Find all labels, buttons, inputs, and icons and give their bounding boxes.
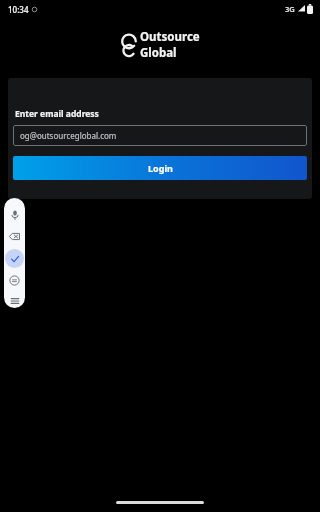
button[interactable]: og@outsourceglobal.com [13, 125, 307, 146]
button[interactable]: Voice input [5, 205, 24, 224]
button[interactable]: Confirm [5, 249, 24, 268]
staticText: Enter email address [15, 108, 99, 120]
staticText: og@outsourceglobal.com [20, 130, 117, 141]
staticText: 10:34 [8, 4, 29, 15]
staticText: Global [140, 45, 177, 61]
button[interactable]: Settings [5, 271, 24, 290]
staticText: Login [148, 162, 173, 174]
button[interactable]: Backspace [5, 227, 24, 246]
staticText: Outsource [140, 29, 200, 45]
button[interactable]: Menu [5, 293, 24, 308]
staticText: 3G [285, 4, 295, 14]
button[interactable]: Login [13, 156, 307, 180]
